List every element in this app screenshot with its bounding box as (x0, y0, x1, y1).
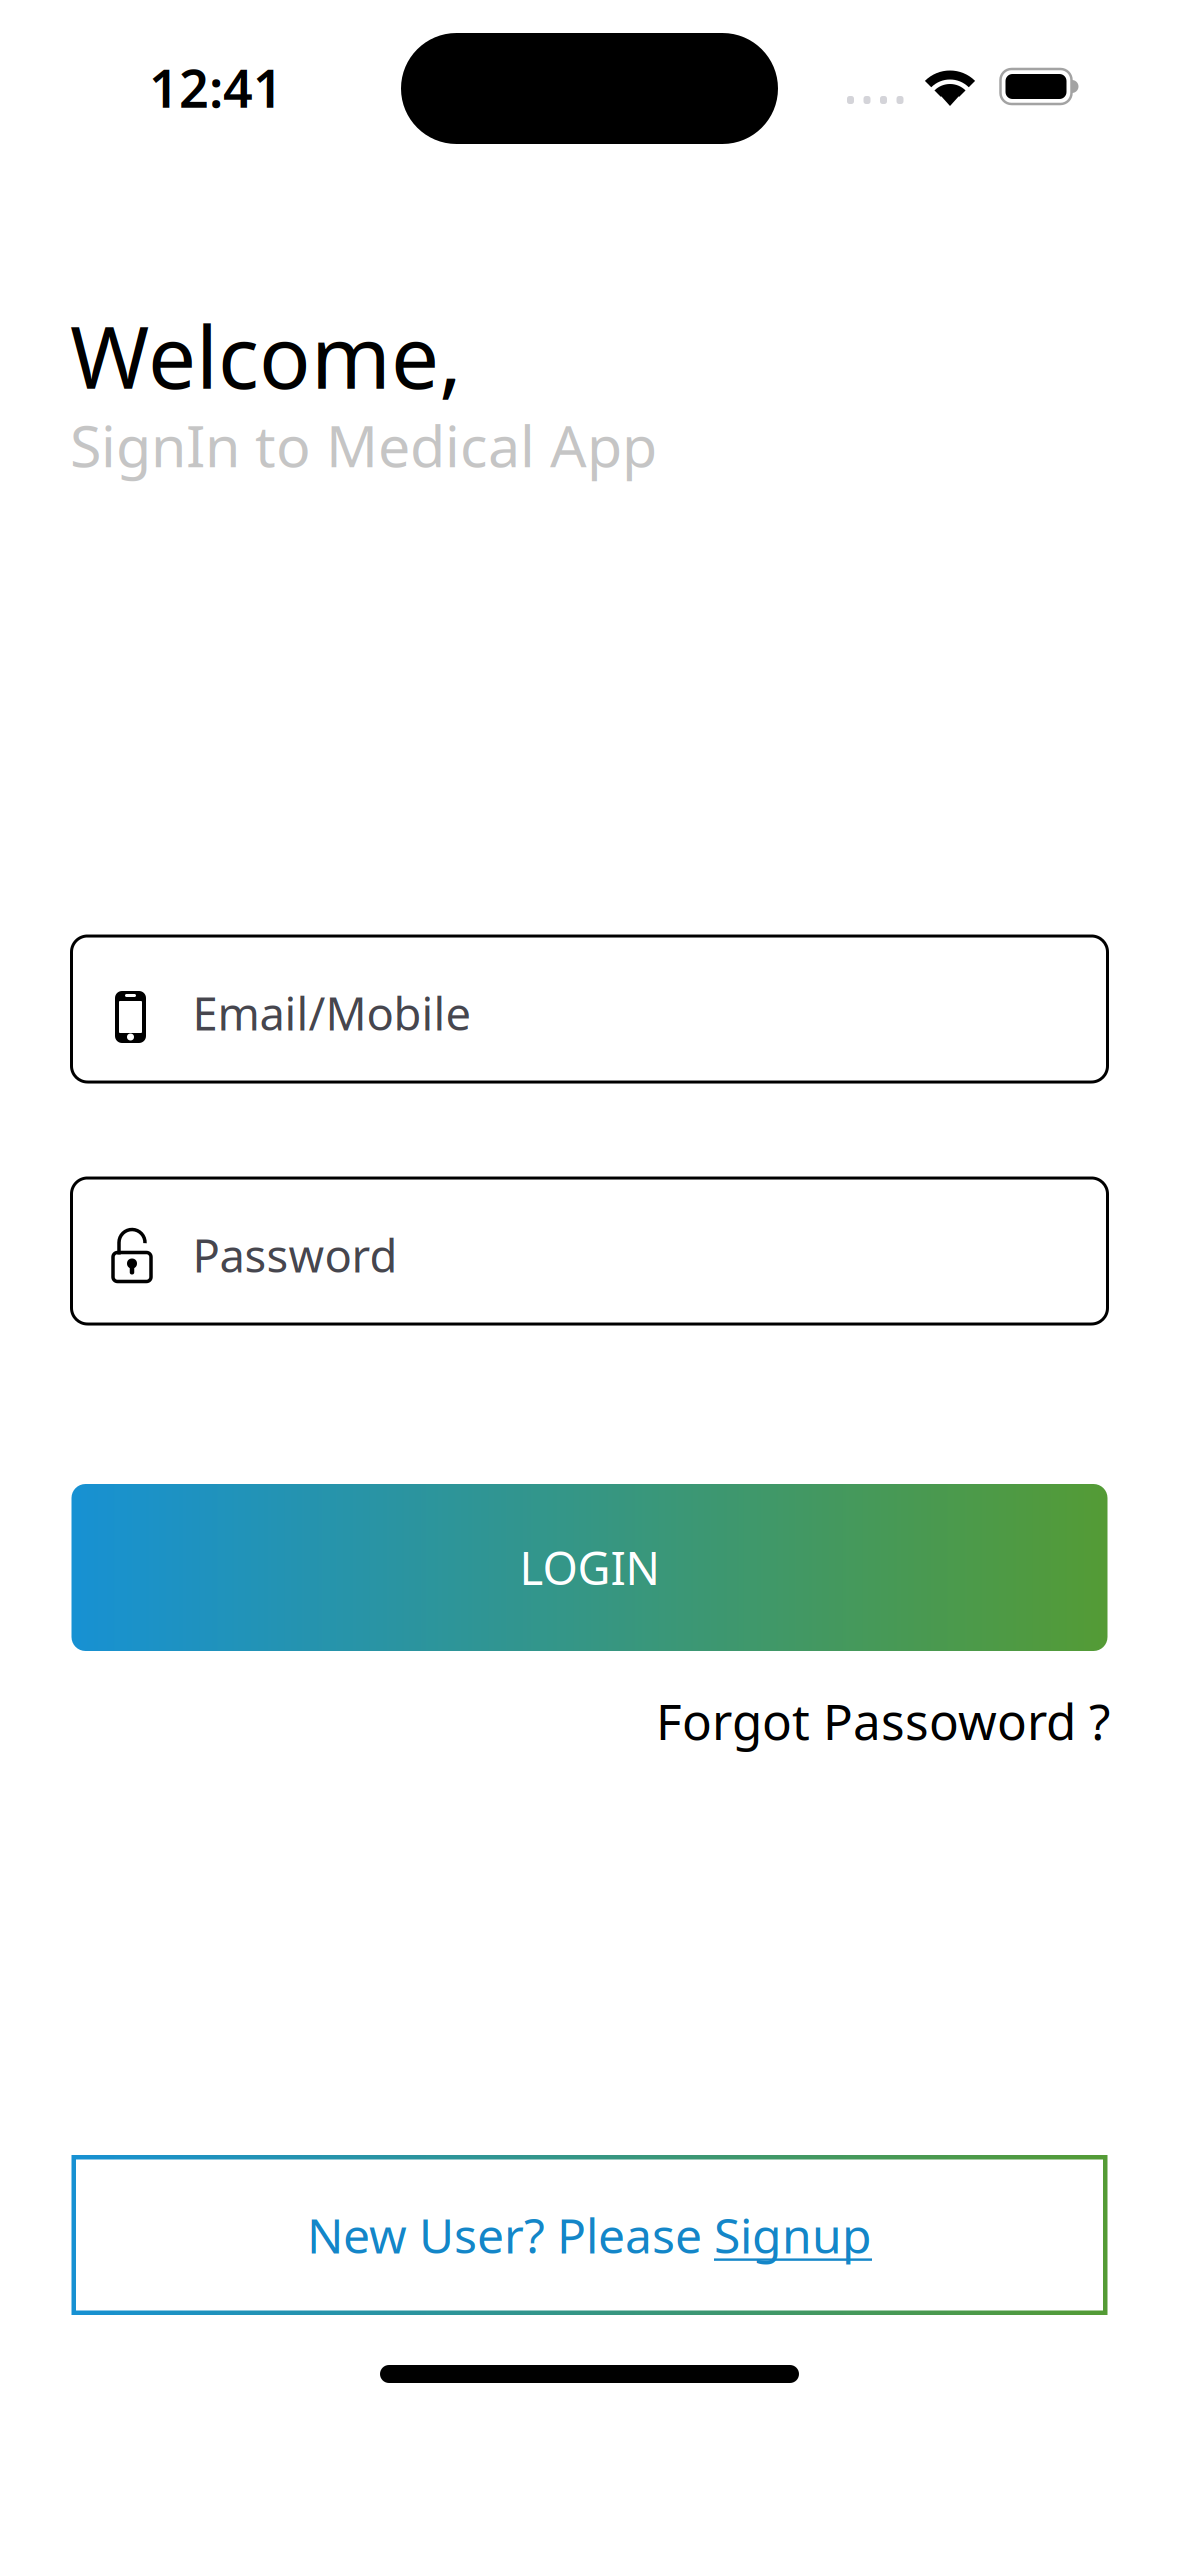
button[interactable]: Signup (71, 2155, 1107, 2315)
button[interactable]: Email/Mobile (71, 936, 1107, 1082)
staticText: Forgot Passoword ? (656, 1688, 1110, 1753)
staticText: LOGIN (519, 1537, 659, 1598)
staticText: SignIn to Medical App (70, 407, 657, 483)
button[interactable]: Forgot Passoword ? (656, 1688, 1110, 1753)
staticText: 12:41 (149, 53, 283, 122)
staticText: New User? Please Signup (307, 2203, 872, 2267)
button[interactable]: Password (71, 1178, 1107, 1324)
staticText: Password (192, 1225, 397, 1285)
staticText: Email/Mobile (192, 983, 471, 1043)
staticText: Welcome, (70, 299, 462, 412)
button[interactable]: LOGIN (71, 1484, 1107, 1651)
